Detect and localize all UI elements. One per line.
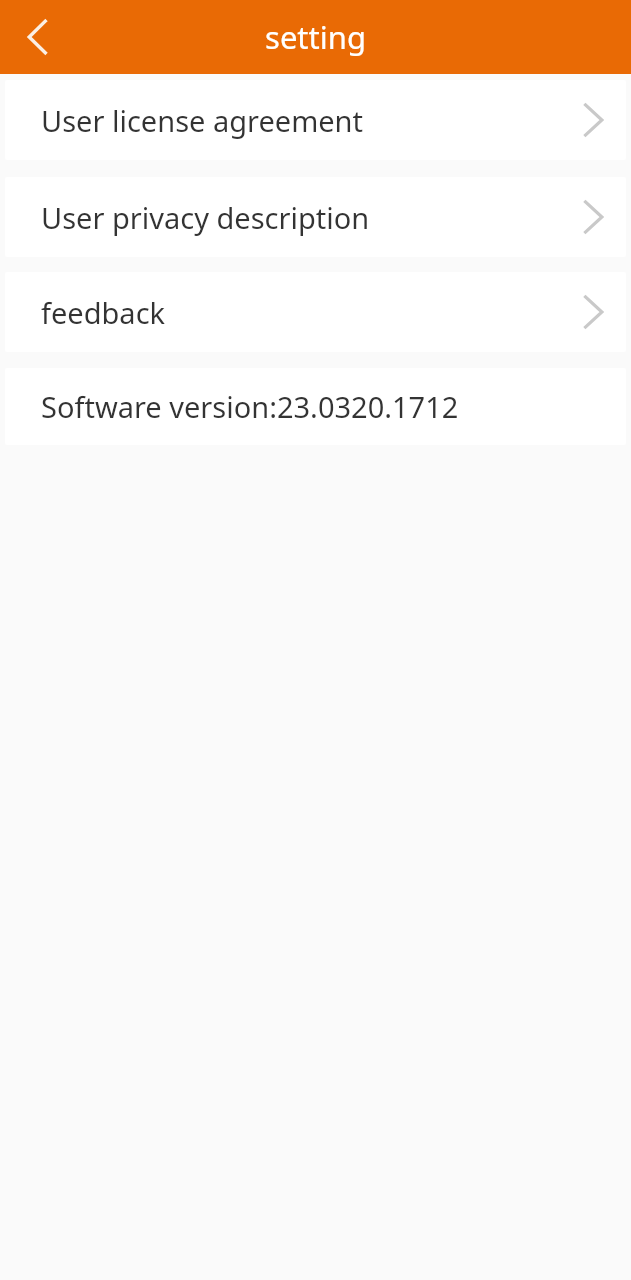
staticText: setting — [0, 16, 631, 58]
button[interactable]: User privacy description — [5, 177, 626, 257]
staticText: User privacy description — [41, 198, 370, 237]
staticText: feedback — [41, 293, 166, 332]
staticText: User license agreement — [41, 101, 363, 140]
button[interactable]: Back — [0, 0, 74, 74]
button[interactable]: Software version:23.0320.1712 — [5, 368, 626, 445]
button[interactable]: User license agreement — [5, 80, 626, 160]
staticText: Software version:23.0320.1712 — [41, 387, 459, 426]
button[interactable]: feedback — [5, 272, 626, 352]
